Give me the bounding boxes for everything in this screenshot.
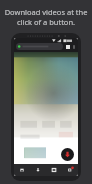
button[interactable]: Home — [14, 164, 30, 176]
button[interactable]: More options — [71, 44, 76, 49]
button[interactable]: Tabs — [65, 44, 70, 49]
button[interactable]: Address bar — [16, 43, 63, 50]
button[interactable]: Download — [61, 148, 74, 161]
button[interactable]: Downloads — [30, 164, 46, 176]
button[interactable]: Notifications — [62, 164, 78, 176]
button[interactable]: Library — [46, 164, 62, 176]
staticText: Download videos at the click of a button… — [4, 7, 88, 27]
